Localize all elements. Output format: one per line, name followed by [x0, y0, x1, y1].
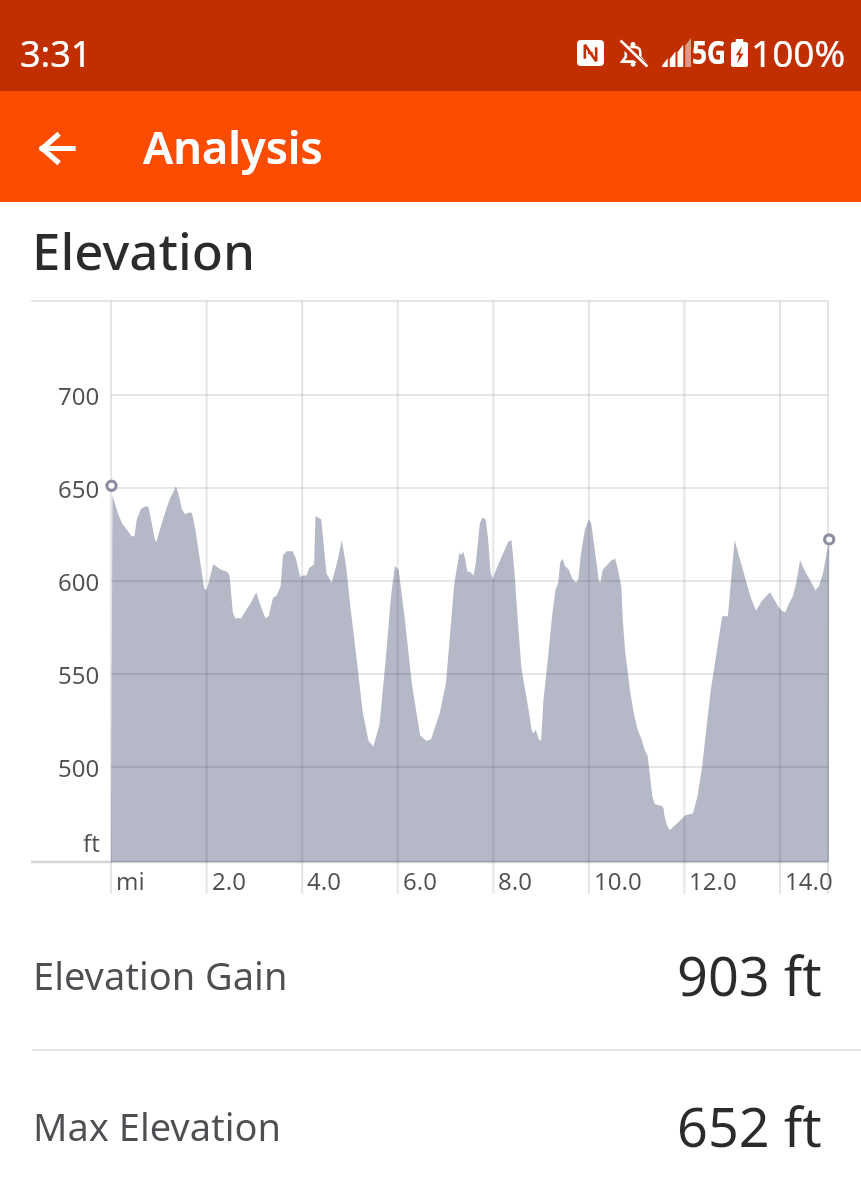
staticText: 2.0: [212, 864, 246, 897]
staticText: ft: [83, 826, 100, 859]
staticText: 3:31: [20, 29, 92, 78]
button[interactable]: Elevation Gain: [0, 900, 861, 1049]
staticText: 100%: [751, 27, 846, 77]
button[interactable]: Back: [20, 112, 92, 184]
staticText: 600: [58, 565, 100, 598]
staticText: 652 ft: [677, 1089, 822, 1163]
staticText: 700: [58, 379, 100, 412]
staticText: Max Elevation: [33, 1100, 281, 1152]
staticText: 5G: [692, 29, 726, 74]
button[interactable]: Max Elevation: [0, 1051, 861, 1200]
staticText: 8.0: [498, 864, 532, 897]
staticText: 500: [58, 751, 100, 784]
staticText: 6.0: [403, 864, 437, 897]
staticText: 4.0: [307, 864, 341, 897]
staticText: mi: [116, 864, 145, 897]
staticText: 550: [58, 658, 100, 691]
staticText: 903 ft: [677, 938, 822, 1012]
staticText: Elevation Gain: [33, 949, 288, 1001]
staticText: Elevation: [32, 215, 255, 284]
staticText: 12.0: [689, 864, 737, 897]
staticText: Analysis: [143, 116, 323, 177]
staticText: 10.0: [594, 864, 642, 897]
staticText: 14.0: [785, 864, 833, 897]
staticText: 650: [58, 472, 100, 505]
